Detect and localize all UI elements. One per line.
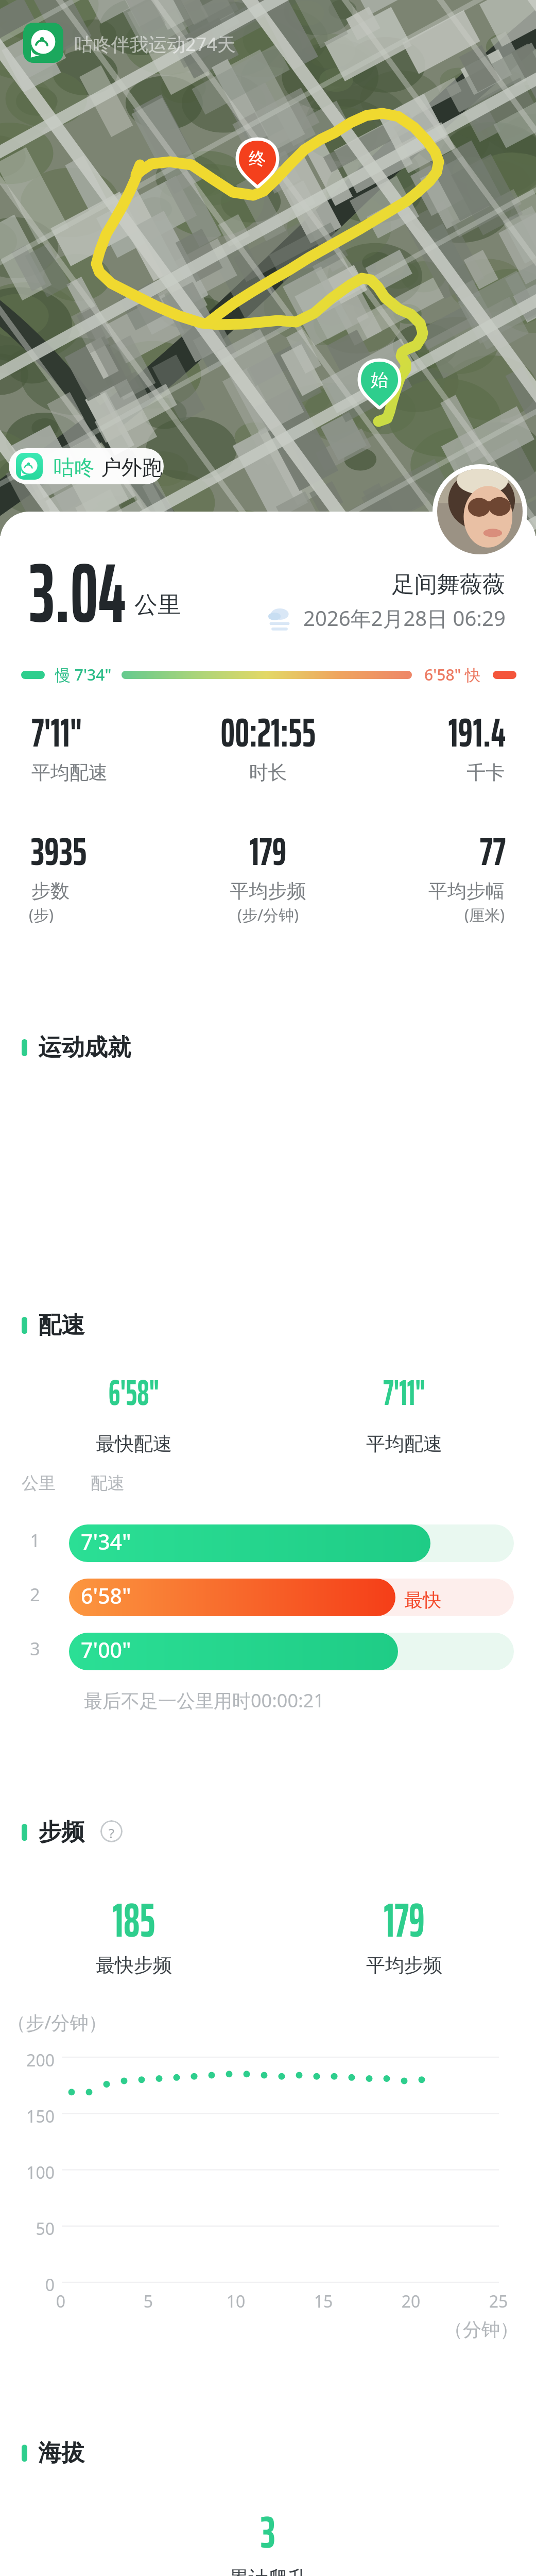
staticText: 7'34"	[81, 1527, 131, 1556]
staticText: 6'58"	[23, 1364, 245, 1421]
staticText: 步频	[38, 1818, 84, 1847]
staticText: 配速	[38, 1311, 84, 1340]
button[interactable]	[69, 1579, 395, 1616]
staticText: 200	[21, 2049, 55, 2072]
staticText: 3935	[31, 821, 87, 882]
button[interactable]: 咕咚	[9, 448, 164, 484]
staticText: 185	[19, 1883, 248, 1958]
staticText: 最快配速	[0, 1432, 268, 1456]
staticText: 最后不足一公里用时00:00:21	[84, 1688, 324, 1713]
staticText: 咕咚伴我运动274天	[74, 31, 236, 57]
staticText: 平均配速	[270, 1432, 536, 1456]
staticText: 始	[359, 369, 400, 391]
staticText: 公里	[22, 1472, 56, 1494]
staticText: 终	[237, 148, 278, 170]
staticText: 6'58"	[81, 1581, 131, 1610]
staticText: 50	[21, 2217, 55, 2240]
staticText: 20	[390, 2290, 431, 2313]
staticText: 179	[290, 1883, 519, 1958]
staticText: (厘米)	[0, 904, 505, 925]
staticText: （步/分钟）	[7, 2010, 107, 2035]
staticText: 7'11"	[31, 701, 82, 764]
staticText: 0	[40, 2290, 81, 2313]
staticText: 平均配速	[31, 760, 108, 785]
staticText: 户外跑	[101, 454, 163, 480]
staticText: 配速	[91, 1472, 125, 1494]
button[interactable]: Cadence help	[100, 1820, 123, 1842]
staticText: 2	[26, 1583, 44, 1606]
staticText: 77	[25, 821, 506, 882]
staticText: 6'58" 快	[424, 664, 481, 685]
staticText: 咕咚	[54, 454, 95, 480]
staticText: 179	[13, 821, 523, 882]
staticText: 慢 7'34"	[55, 664, 112, 685]
staticText: 3	[26, 1637, 44, 1660]
staticText: 3	[27, 2497, 509, 2567]
staticText: 足间舞薇薇	[392, 570, 505, 599]
staticText: (步/分钟)	[0, 904, 536, 925]
staticText: 步数	[31, 879, 70, 903]
staticText: 150	[21, 2105, 55, 2128]
staticText: 15	[303, 2290, 344, 2313]
staticText: 25	[478, 2290, 519, 2313]
button[interactable]: Codoon logo	[23, 23, 63, 63]
staticText: 最快步频	[0, 1953, 268, 1977]
staticText: 1	[26, 1529, 44, 1552]
staticText: 100	[21, 2161, 55, 2184]
staticText: 最快	[404, 1588, 441, 1612]
staticText: 累计爬升	[0, 2566, 536, 2576]
staticText: 海拔	[38, 2438, 84, 2468]
staticText: 00:21:55	[27, 701, 509, 764]
button[interactable]: User avatar	[433, 464, 527, 559]
staticText: 7'00"	[81, 1635, 131, 1664]
staticText: 7'11"	[293, 1364, 515, 1421]
staticText: 平均步频	[270, 1953, 536, 1977]
staticText: 运动成就	[38, 1033, 131, 1062]
staticText: 10	[215, 2290, 256, 2313]
staticText: 0	[21, 2274, 55, 2296]
staticText: ?	[100, 1824, 123, 1842]
staticText: 公里	[134, 590, 181, 620]
staticText: 3.04	[29, 527, 126, 658]
staticText: 191.4	[35, 701, 506, 764]
button[interactable]	[69, 1524, 430, 1562]
staticText: (步)	[29, 904, 54, 925]
staticText: 平均步幅	[0, 879, 505, 903]
button[interactable]	[69, 1633, 398, 1670]
staticText: 千卡	[0, 760, 505, 785]
staticText: 时长	[0, 760, 536, 785]
staticText: 5	[128, 2290, 169, 2313]
staticText: （分钟）	[0, 2318, 518, 2341]
staticText: 平均步频	[0, 879, 536, 903]
staticText: 2026年2月28日 06:29	[303, 604, 506, 632]
